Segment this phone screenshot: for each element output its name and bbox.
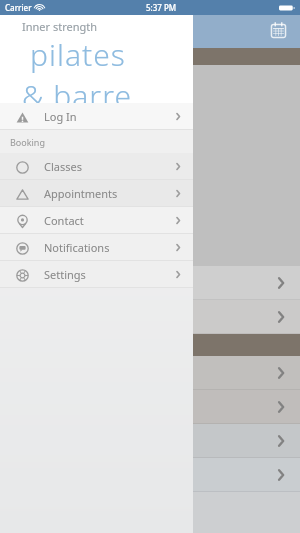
staticText: Settings <box>44 267 86 282</box>
staticText: Appointments <box>44 186 118 201</box>
button[interactable]: Notifications <box>0 234 193 261</box>
staticText: Notifications <box>44 240 110 255</box>
staticText: Booking <box>10 136 45 148</box>
button[interactable]: Settings <box>0 261 193 288</box>
staticText: Carrier <box>5 2 32 13</box>
button[interactable]: Appointments <box>0 180 193 207</box>
button[interactable] <box>0 266 300 300</box>
staticText: Log In <box>44 109 77 124</box>
button[interactable] <box>0 458 300 492</box>
staticText: Classes <box>44 159 82 174</box>
button[interactable]: Classes <box>0 153 193 180</box>
staticText: & barre <box>22 75 132 103</box>
button[interactable] <box>0 390 300 424</box>
staticText: pilates <box>30 34 126 75</box>
button[interactable] <box>0 424 300 458</box>
button[interactable] <box>0 356 300 390</box>
button[interactable]: Calendar <box>263 15 293 45</box>
button[interactable]: Contact <box>0 207 193 234</box>
staticText: Contact <box>44 213 84 228</box>
staticText: 5:37 PM <box>146 2 177 13</box>
button[interactable]: Log In <box>0 103 193 130</box>
staticText: Inner strength <box>22 19 98 34</box>
button[interactable] <box>0 300 300 334</box>
